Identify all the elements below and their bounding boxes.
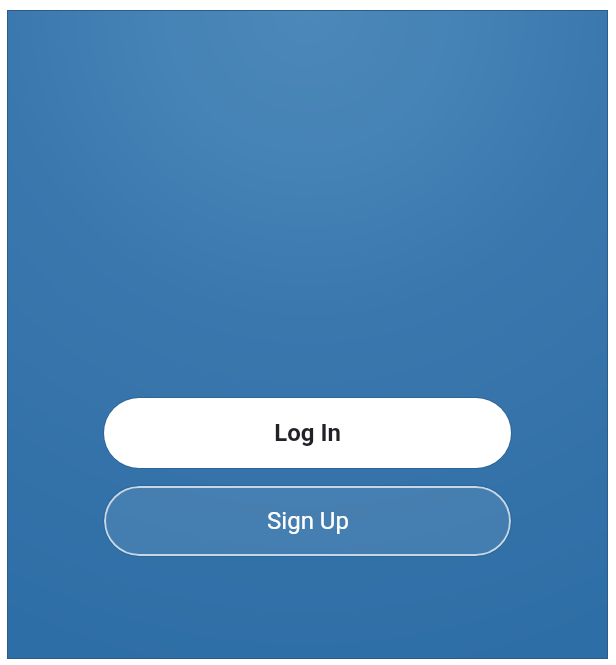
- staticText: Log In: [274, 419, 341, 447]
- staticText: Sign Up: [267, 507, 349, 535]
- button[interactable]: Sign Up: [104, 486, 511, 556]
- button[interactable]: Log In: [104, 398, 511, 468]
